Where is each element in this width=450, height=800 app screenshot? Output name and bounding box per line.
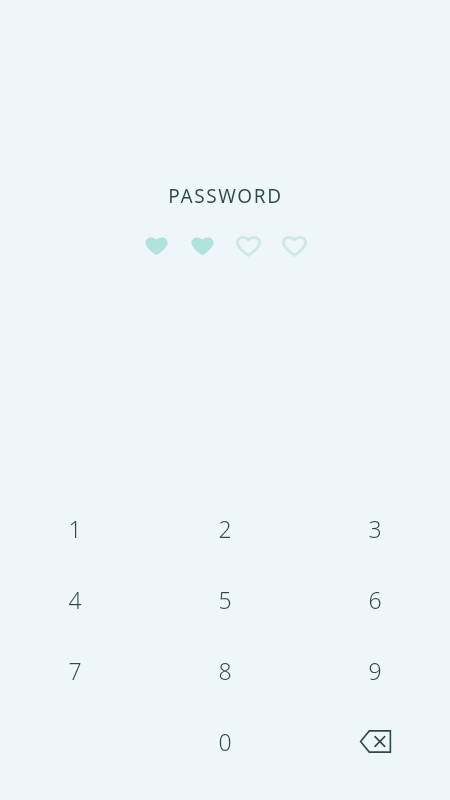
staticText: 0 bbox=[218, 726, 232, 757]
staticText: 1 bbox=[68, 513, 82, 544]
button[interactable]: 2 bbox=[150, 493, 300, 564]
staticText: 7 bbox=[68, 655, 82, 686]
button[interactable]: 1 bbox=[0, 493, 150, 564]
staticText: PASSWORD bbox=[168, 183, 283, 209]
button[interactable]: 3 bbox=[300, 493, 450, 564]
button[interactable]: 6 bbox=[300, 564, 450, 635]
button[interactable]: 9 bbox=[300, 635, 450, 706]
button[interactable]: 0 bbox=[150, 706, 300, 777]
staticText: 5 bbox=[218, 584, 232, 615]
button[interactable]: 8 bbox=[150, 635, 300, 706]
button[interactable]: Backspace bbox=[300, 706, 450, 777]
button[interactable]: 5 bbox=[150, 564, 300, 635]
staticText: 3 bbox=[368, 513, 382, 544]
staticText: 2 bbox=[218, 513, 232, 544]
staticText: 4 bbox=[68, 584, 82, 615]
button[interactable]: 7 bbox=[0, 635, 150, 706]
staticText: 8 bbox=[218, 655, 232, 686]
button[interactable]: 4 bbox=[0, 564, 150, 635]
staticText: 6 bbox=[368, 584, 382, 615]
staticText: 9 bbox=[368, 655, 382, 686]
